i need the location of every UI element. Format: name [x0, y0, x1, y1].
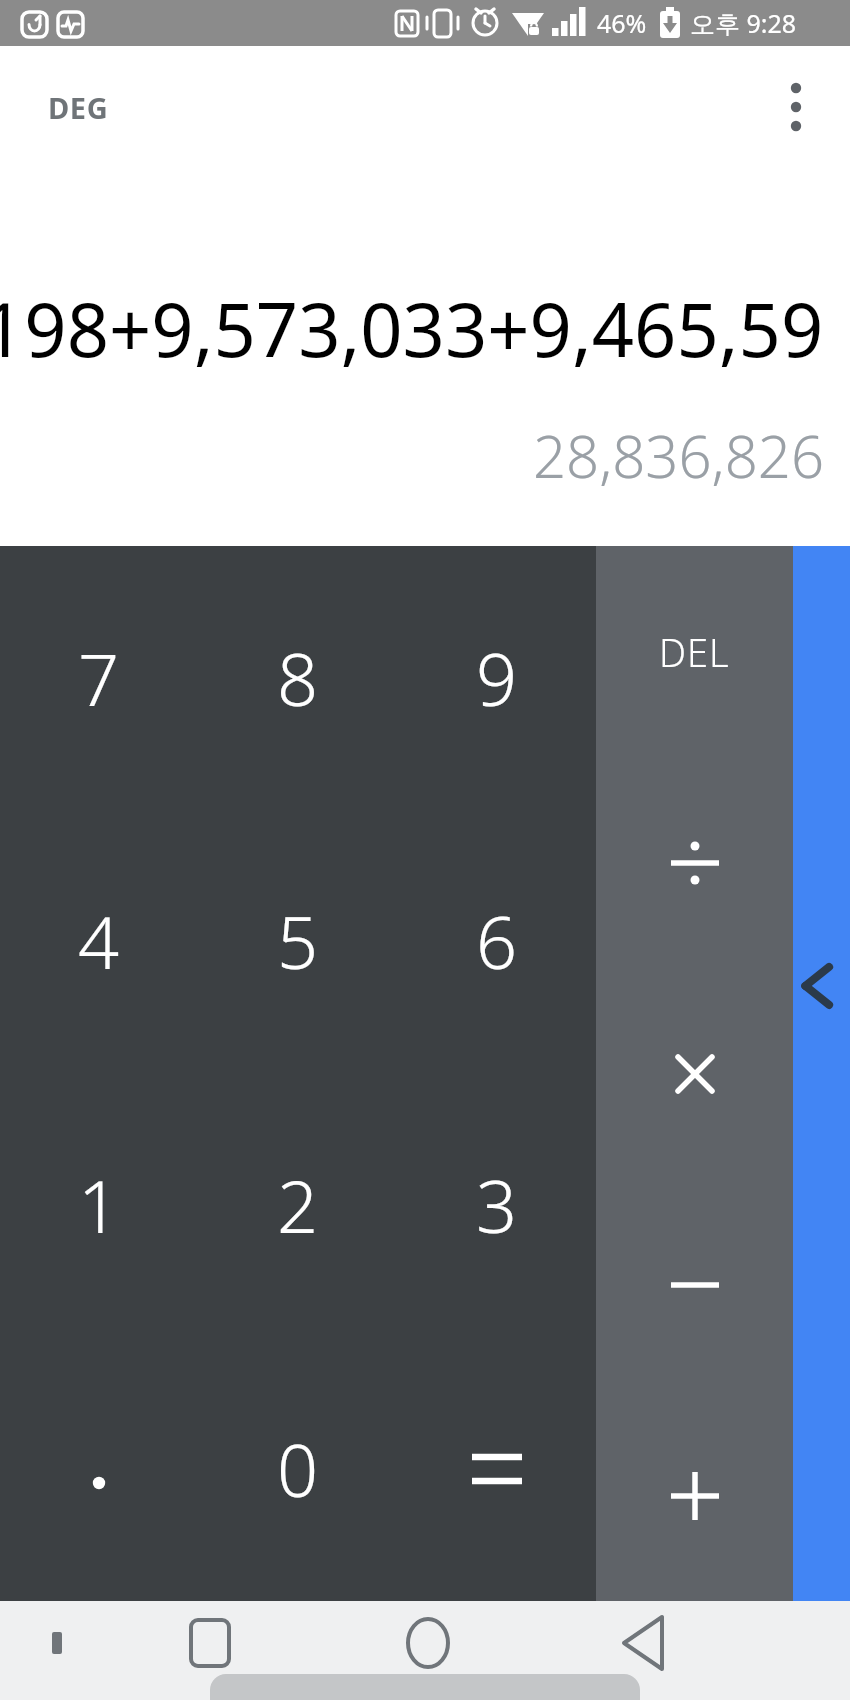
button[interactable]: Back — [595, 1593, 695, 1692]
staticText: 3 — [476, 1156, 518, 1254]
button[interactable] — [596, 757, 793, 968]
staticText: 28,836,826 — [532, 416, 824, 495]
button[interactable]: 9 — [397, 546, 596, 809]
staticText: 6 — [476, 892, 518, 990]
button[interactable]: Home — [378, 1593, 478, 1692]
button[interactable]: DEG — [30, 76, 127, 139]
button[interactable]: Open advanced pad — [793, 546, 850, 1601]
button[interactable] — [397, 1337, 596, 1601]
staticText: 9 — [476, 629, 518, 727]
button[interactable]: DEL — [596, 546, 793, 757]
staticText: 2 — [277, 1156, 319, 1254]
button[interactable] — [596, 1179, 793, 1390]
staticText: 0 — [277, 1420, 319, 1518]
button[interactable]: 6 — [397, 809, 596, 1073]
staticText: 1 — [78, 1156, 120, 1254]
staticText: 오후 9:28 — [690, 6, 797, 40]
staticText: 5 — [277, 892, 319, 990]
button[interactable]: Recent apps — [160, 1593, 260, 1692]
button[interactable]: 7 — [0, 546, 198, 809]
button[interactable] — [596, 1390, 793, 1601]
button[interactable] — [0, 1337, 198, 1601]
button[interactable]: 8 — [198, 546, 397, 809]
button[interactable]: 4 — [0, 809, 198, 1073]
button[interactable]: Hide navigation bar — [34, 1620, 80, 1666]
button[interactable]: 0 — [198, 1337, 397, 1601]
staticText: 4 — [78, 892, 120, 990]
staticText: 198+9,573,033+9,465,595 — [0, 278, 832, 379]
button[interactable]: More options — [760, 71, 832, 143]
button[interactable]: 3 — [397, 1073, 596, 1337]
staticText: DEG — [48, 88, 109, 127]
button[interactable]: 5 — [198, 809, 397, 1073]
button[interactable] — [596, 968, 793, 1179]
button[interactable]: 1 — [0, 1073, 198, 1337]
staticText: 46% — [597, 6, 647, 40]
staticText: DEL — [659, 626, 730, 678]
button[interactable]: 2 — [198, 1073, 397, 1337]
staticText: 7 — [78, 629, 120, 727]
staticText: 8 — [277, 629, 319, 727]
